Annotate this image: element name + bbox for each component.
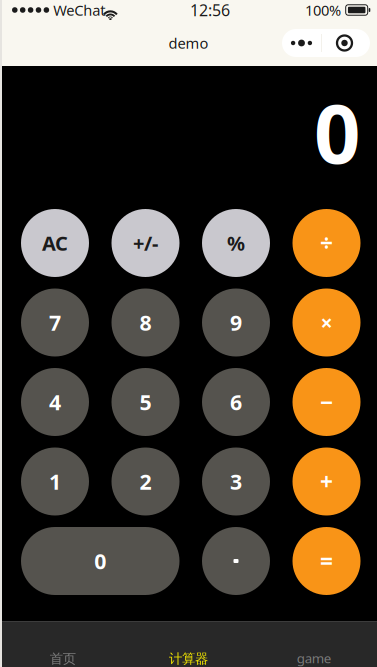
staticText: % bbox=[227, 230, 245, 256]
button[interactable]: +/- bbox=[111, 209, 179, 277]
button[interactable]: × bbox=[292, 288, 360, 356]
button[interactable]: % bbox=[202, 209, 270, 277]
button[interactable]: ÷ bbox=[292, 209, 360, 277]
staticText: 9 bbox=[230, 308, 242, 337]
staticText: = bbox=[320, 546, 333, 576]
button[interactable]: AC bbox=[21, 209, 89, 277]
staticText: 12:56 bbox=[190, 0, 230, 21]
staticText: 7 bbox=[49, 308, 61, 337]
button[interactable]: Decimal point bbox=[202, 527, 270, 595]
staticText: 5 bbox=[139, 388, 151, 416]
button[interactable]: + bbox=[292, 447, 360, 515]
staticText: 8 bbox=[139, 308, 151, 337]
button[interactable]: 5 bbox=[111, 368, 179, 436]
staticText: 2 bbox=[139, 467, 151, 496]
staticText: 1 bbox=[49, 467, 61, 496]
button[interactable]: − bbox=[292, 368, 360, 436]
staticText: game bbox=[297, 649, 332, 667]
button[interactable]: 4 bbox=[21, 368, 89, 436]
button[interactable]: 首页 bbox=[0, 622, 126, 667]
staticText: AC bbox=[42, 230, 68, 256]
staticText: 3 bbox=[230, 467, 242, 496]
staticText: 6 bbox=[230, 388, 242, 416]
staticText: ÷ bbox=[320, 228, 333, 258]
button[interactable]: Mini program menu bbox=[282, 29, 370, 57]
button[interactable]: 7 bbox=[21, 288, 89, 356]
button[interactable]: 3 bbox=[202, 447, 270, 515]
staticText: +/- bbox=[133, 230, 158, 256]
button[interactable]: 1 bbox=[21, 447, 89, 515]
staticText: 首页 bbox=[50, 651, 76, 667]
button[interactable]: 计算器 bbox=[126, 622, 251, 667]
staticText: 0 bbox=[314, 78, 361, 186]
staticText: 0 bbox=[94, 547, 106, 575]
staticText: × bbox=[320, 308, 332, 337]
staticText: WeChat bbox=[53, 0, 105, 20]
button[interactable]: 8 bbox=[111, 288, 179, 356]
button[interactable]: = bbox=[292, 527, 360, 595]
staticText: 计算器 bbox=[169, 651, 208, 667]
button[interactable]: 9 bbox=[202, 288, 270, 356]
button[interactable]: 0 bbox=[21, 527, 179, 595]
staticText: 100% bbox=[305, 0, 341, 20]
staticText: 4 bbox=[49, 388, 61, 416]
staticText: + bbox=[320, 466, 333, 496]
button[interactable]: game bbox=[251, 622, 377, 667]
button[interactable]: 2 bbox=[111, 447, 179, 515]
staticText: − bbox=[320, 387, 333, 417]
staticText: demo bbox=[168, 33, 208, 53]
button[interactable]: 6 bbox=[202, 368, 270, 436]
